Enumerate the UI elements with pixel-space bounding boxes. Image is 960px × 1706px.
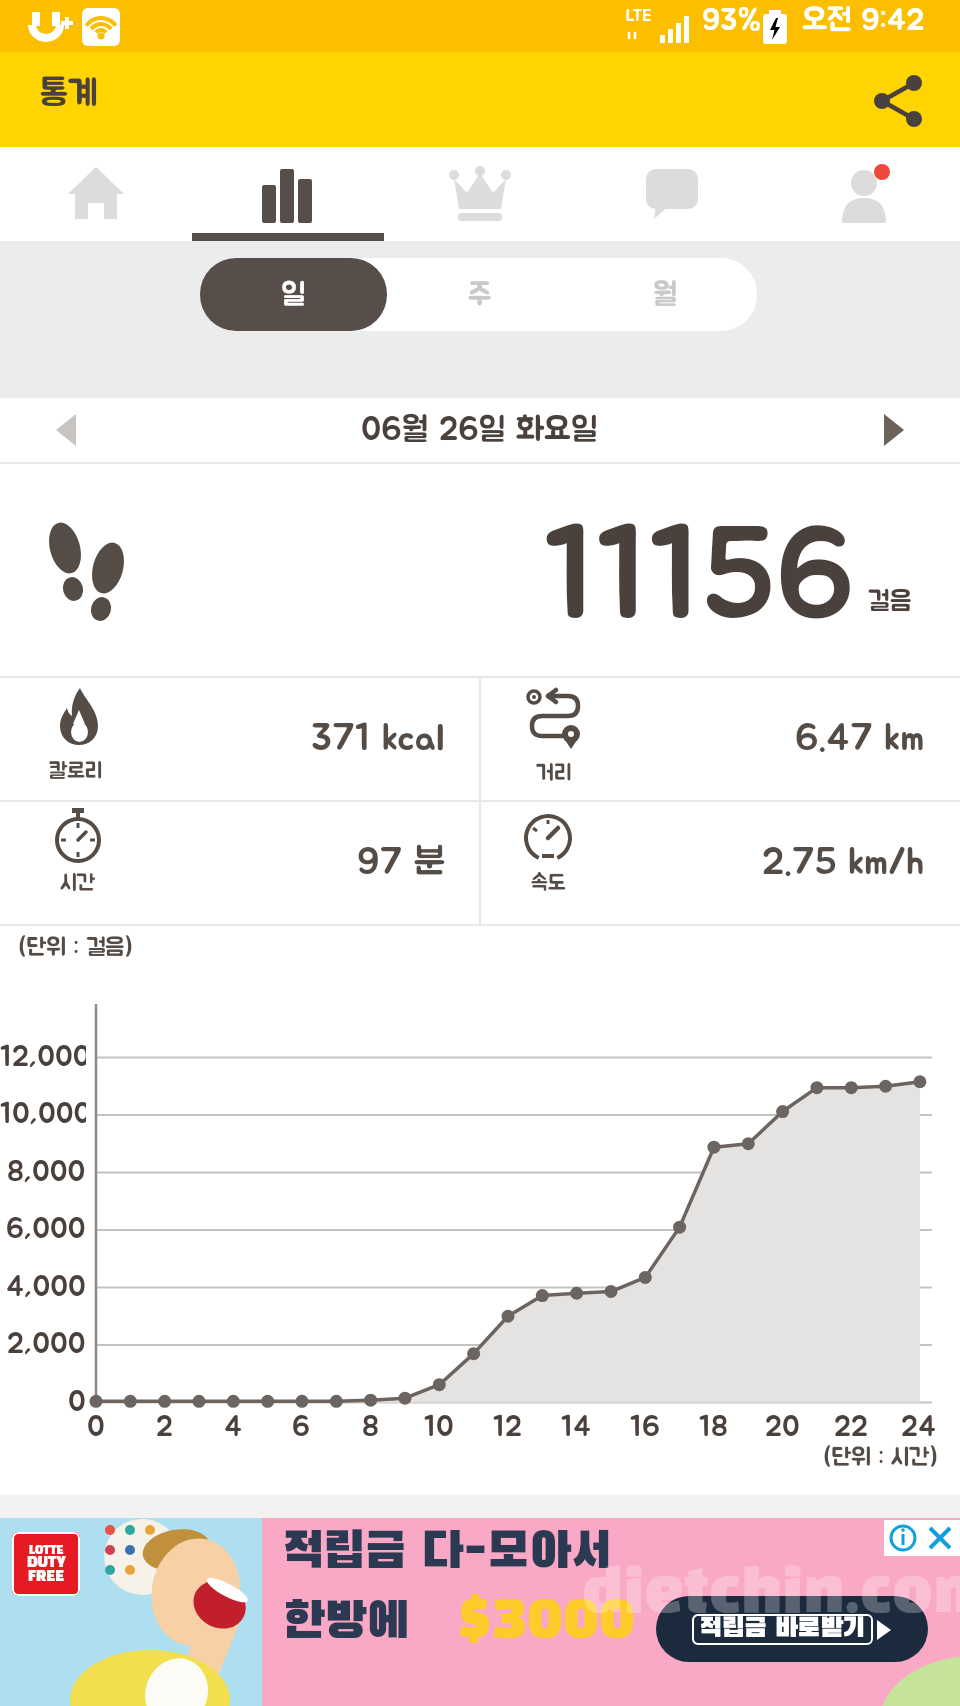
button[interactable] bbox=[0, 678, 479, 800]
staticText: 주 bbox=[468, 280, 492, 310]
staticText: 8,000 bbox=[7, 1158, 86, 1187]
staticText: (단위 : 시간) bbox=[823, 1446, 938, 1470]
staticText: 2,000 bbox=[7, 1330, 86, 1359]
staticText: 걸음 bbox=[868, 588, 912, 615]
button[interactable] bbox=[40, 402, 96, 458]
staticText: 2.75 km/h bbox=[762, 844, 925, 882]
button[interactable]: LOTTE bbox=[0, 1518, 960, 1706]
button[interactable] bbox=[192, 147, 384, 241]
staticText: (단위 : 걸음) bbox=[18, 936, 133, 960]
staticText: 한방에 bbox=[283, 1598, 410, 1648]
staticText: 일 bbox=[281, 280, 306, 310]
button[interactable]: 주 bbox=[387, 258, 573, 331]
staticText: 22 bbox=[834, 1413, 868, 1442]
staticText: 6.47 km bbox=[795, 720, 925, 758]
staticText: DUTY bbox=[27, 1556, 66, 1570]
staticText: 93% bbox=[702, 5, 762, 36]
button[interactable] bbox=[864, 402, 920, 458]
staticText: 거리 bbox=[536, 762, 572, 784]
staticText: $3000 bbox=[458, 1590, 636, 1650]
staticText: 14 bbox=[561, 1413, 592, 1442]
button[interactable]: 적립금 바로받기 bbox=[656, 1596, 928, 1662]
button[interactable] bbox=[866, 68, 932, 134]
staticText: 24 bbox=[901, 1413, 937, 1442]
button[interactable] bbox=[0, 802, 479, 924]
staticText: 10,000 bbox=[0, 1100, 86, 1129]
staticText: 11156 bbox=[544, 516, 855, 644]
staticText: 적립금 다-모아서 bbox=[283, 1528, 612, 1578]
staticText: LTE bbox=[626, 8, 652, 24]
button[interactable] bbox=[0, 147, 192, 241]
button[interactable] bbox=[481, 678, 960, 800]
button[interactable] bbox=[768, 147, 960, 241]
staticText: 18 bbox=[699, 1413, 728, 1442]
staticText: 6 bbox=[292, 1413, 310, 1442]
staticText: 4,000 bbox=[6, 1273, 86, 1302]
staticText: 시간 bbox=[60, 872, 96, 894]
staticText: 4 bbox=[224, 1413, 243, 1442]
staticText: dietchin.com bbox=[582, 1566, 960, 1624]
staticText: 오전 9:42 bbox=[802, 5, 925, 36]
staticText: 10 bbox=[424, 1413, 454, 1442]
button[interactable] bbox=[884, 1520, 960, 1556]
staticText: 0 bbox=[68, 1388, 86, 1417]
staticText: 06월 26일 화요일 bbox=[361, 414, 599, 447]
staticText: 적립금 바로받기 bbox=[700, 1616, 865, 1643]
staticText: 12 bbox=[493, 1413, 522, 1442]
button[interactable]: 월 bbox=[573, 258, 757, 331]
staticText: 6,000 bbox=[6, 1215, 86, 1244]
staticText: 16 bbox=[630, 1413, 660, 1442]
staticText: 20 bbox=[765, 1413, 800, 1442]
staticText: FREE bbox=[28, 1570, 65, 1584]
staticText: 월 bbox=[653, 280, 678, 310]
staticText: 97 분 bbox=[357, 844, 445, 882]
staticText: 2 bbox=[156, 1413, 173, 1442]
staticText: 12,000 bbox=[0, 1043, 86, 1072]
staticText: 속도 bbox=[531, 872, 566, 894]
button[interactable]: 일 bbox=[200, 258, 387, 331]
button[interactable] bbox=[384, 147, 576, 241]
staticText: LOTTE bbox=[29, 1545, 64, 1556]
staticText: 371 kcal bbox=[311, 720, 445, 758]
button[interactable] bbox=[481, 802, 960, 924]
staticText: 칼로리 bbox=[49, 760, 103, 782]
staticText: 8 bbox=[362, 1413, 379, 1442]
staticText: 0 bbox=[87, 1413, 105, 1442]
staticText: 통계 bbox=[40, 76, 98, 112]
button[interactable] bbox=[576, 147, 768, 241]
